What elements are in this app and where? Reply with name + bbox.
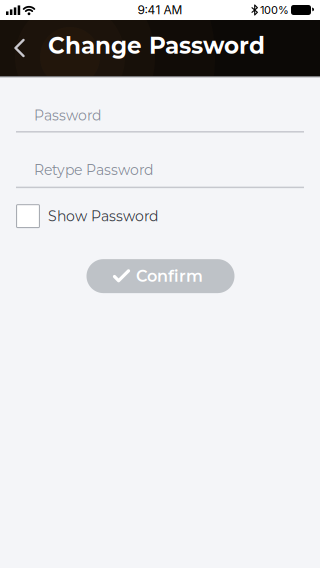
staticText: Change Password	[48, 31, 265, 59]
staticText: Password	[34, 107, 101, 124]
button[interactable]: Back	[8, 28, 32, 68]
staticText: Confirm	[136, 266, 203, 286]
staticText: Show Password	[48, 208, 158, 225]
staticText: 100%	[260, 3, 289, 17]
staticText: Retype Password	[34, 162, 153, 179]
button[interactable]: Confirm	[86, 259, 234, 293]
staticText: 9:41 AM	[137, 3, 182, 17]
button[interactable]: Show Password	[16, 204, 158, 228]
